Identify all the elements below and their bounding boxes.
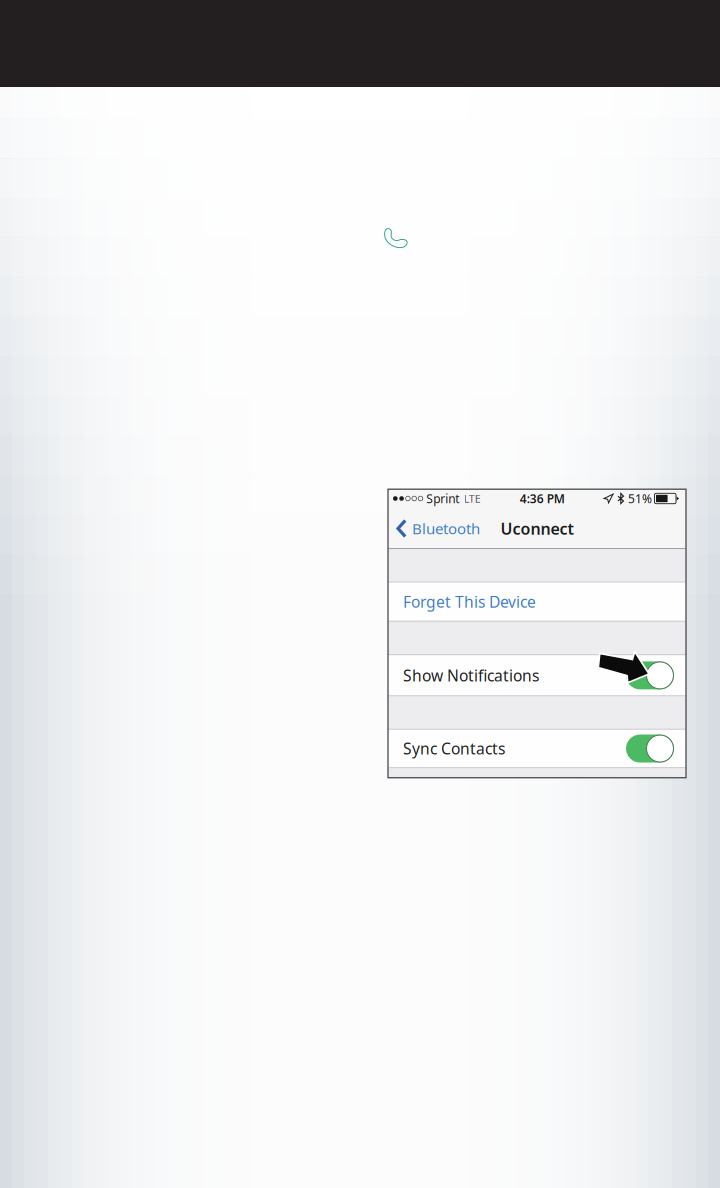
staticText: Sprint [426, 490, 459, 506]
staticText: Forget This Device [403, 591, 536, 612]
staticText: Uconnect [500, 518, 573, 539]
button[interactable]: Show Notifications [388, 654, 686, 696]
button[interactable]: Forget This Device [388, 582, 686, 622]
staticText: Show Notifications [403, 665, 539, 686]
staticText: Sync Contacts [403, 738, 505, 759]
button[interactable]: Sync Contacts [388, 729, 686, 768]
staticText: 51% [628, 490, 652, 506]
staticText: LTE [464, 491, 481, 506]
staticText: 4:36 PM [520, 490, 565, 506]
button[interactable]: Bluetooth [388, 508, 492, 549]
staticText: Bluetooth [412, 518, 480, 539]
